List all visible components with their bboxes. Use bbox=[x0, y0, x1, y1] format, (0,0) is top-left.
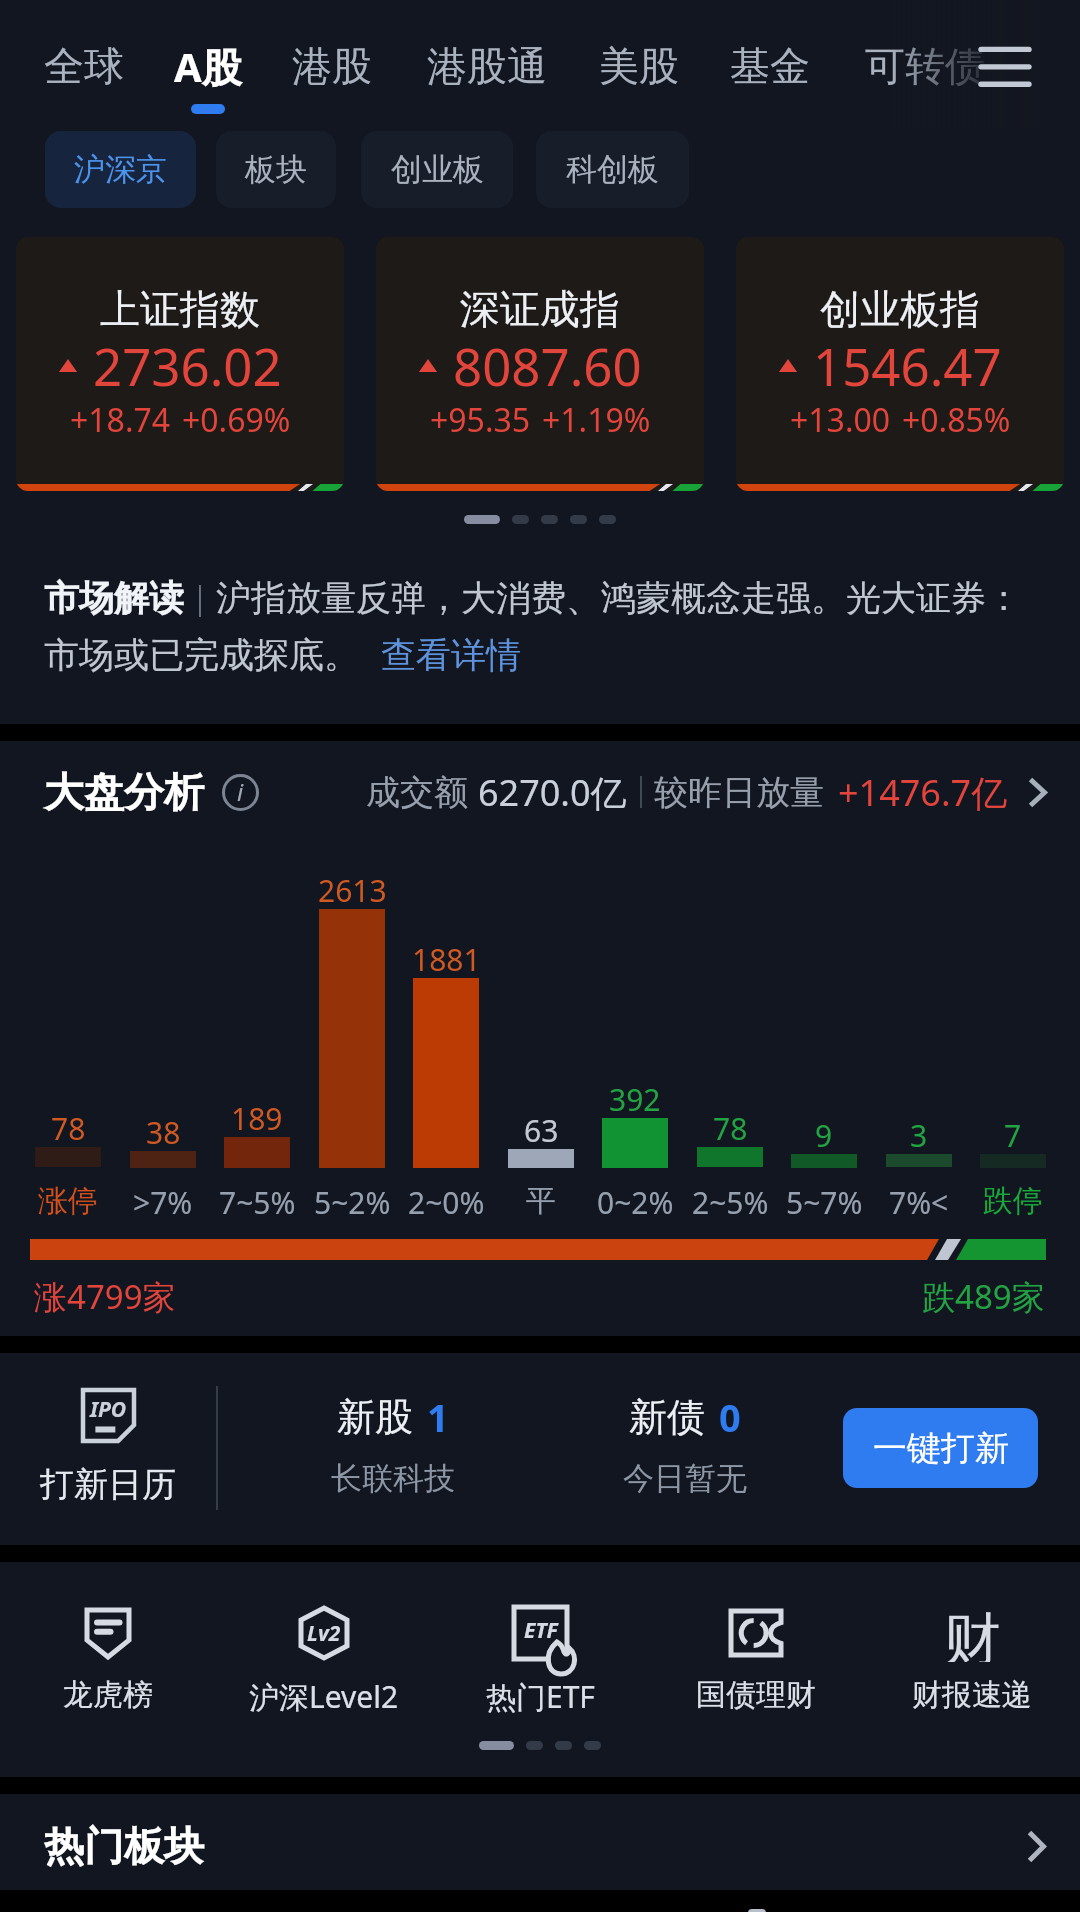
staticText: 跌停 bbox=[983, 1182, 1043, 1220]
staticText: 5~2% bbox=[314, 1182, 391, 1223]
staticText: +95.35 bbox=[430, 398, 531, 442]
button[interactable]: 新股 bbox=[285, 1391, 500, 1498]
staticText: 78 bbox=[51, 1108, 86, 1149]
staticText: 创业板 bbox=[391, 150, 484, 189]
button[interactable]: 上证指数 bbox=[16, 237, 344, 491]
staticText: +18.74 bbox=[70, 398, 171, 442]
button[interactable]: 全球 bbox=[34, 31, 134, 101]
staticText: +1.19% bbox=[542, 398, 651, 442]
staticText: 涨停 bbox=[38, 1182, 98, 1220]
staticText: 较昨日放量 bbox=[654, 771, 824, 814]
staticText: 全球 bbox=[44, 41, 124, 91]
button[interactable]: 可转债 bbox=[860, 31, 990, 101]
staticText: 大盘分析 bbox=[44, 767, 204, 817]
button[interactable]: 美股 bbox=[589, 31, 689, 101]
staticText: 一键打新 bbox=[873, 1427, 1009, 1470]
staticText: 平 bbox=[526, 1182, 556, 1220]
button[interactable]: 大盘分析 bbox=[44, 764, 259, 820]
staticText: 板块 bbox=[245, 150, 307, 189]
staticText: 港股 bbox=[292, 41, 372, 91]
staticText: 涨4799家 bbox=[34, 1274, 176, 1319]
button[interactable]: 国债理财 bbox=[648, 1604, 864, 1714]
staticText: 沪深京 bbox=[74, 150, 167, 189]
button[interactable]: 一键打新 bbox=[843, 1408, 1038, 1488]
staticText: 2613 bbox=[318, 870, 387, 911]
staticText: 龙虎榜 bbox=[63, 1676, 153, 1714]
button[interactable]: 市场解读 bbox=[44, 576, 1058, 677]
staticText: 新债 bbox=[629, 1393, 705, 1441]
staticText: 成交额 bbox=[366, 771, 468, 814]
staticText: 热门ETF bbox=[486, 1676, 595, 1717]
staticText: 沪深Level2 bbox=[249, 1676, 399, 1717]
staticText: +1476.7亿 bbox=[838, 768, 1008, 817]
staticText: 392 bbox=[609, 1079, 661, 1120]
staticText: 78 bbox=[713, 1108, 748, 1149]
staticText: 63 bbox=[524, 1110, 559, 1151]
button[interactable]: 创业板指 bbox=[736, 237, 1064, 491]
button[interactable]: 新债 bbox=[577, 1391, 792, 1498]
button[interactable]: IPO bbox=[38, 1387, 178, 1506]
staticText: 长联科技 bbox=[331, 1459, 455, 1498]
staticText: 上证指数 bbox=[100, 284, 260, 334]
staticText: 热门板块 bbox=[44, 1821, 204, 1871]
staticText: 市场或已完成探底。 bbox=[44, 633, 359, 677]
staticText: 今日暂无 bbox=[623, 1459, 747, 1498]
staticText: 财 bbox=[944, 1604, 1001, 1662]
button[interactable]: Lv2 bbox=[216, 1604, 432, 1717]
button[interactable]: 港股通 bbox=[422, 31, 552, 101]
button[interactable]: 财 bbox=[864, 1604, 1080, 1714]
button[interactable]: ETF bbox=[432, 1604, 648, 1717]
staticText: 1881 bbox=[412, 939, 481, 980]
staticText: 可转债 bbox=[865, 41, 985, 91]
staticText: 财报速递 bbox=[912, 1676, 1032, 1714]
staticText: 1546.47 bbox=[813, 331, 1002, 400]
staticText: A股 bbox=[174, 39, 242, 94]
staticText: +13.00 bbox=[790, 398, 891, 442]
button[interactable]: 成交额 bbox=[366, 764, 1047, 820]
button[interactable]: 港股 bbox=[282, 31, 382, 101]
staticText: 2~0% bbox=[408, 1182, 485, 1223]
button[interactable]: Menu bbox=[957, 25, 1053, 109]
staticText: 8087.60 bbox=[453, 331, 642, 400]
staticText: 7~5% bbox=[219, 1182, 296, 1223]
staticText: 市场解读 bbox=[44, 576, 184, 620]
staticText: 美股 bbox=[599, 41, 679, 91]
staticText: 港股通 bbox=[427, 41, 547, 91]
staticText: ｜ bbox=[184, 578, 216, 618]
button[interactable]: 基金 bbox=[720, 31, 820, 101]
staticText: 38 bbox=[146, 1112, 181, 1153]
staticText: 打新日历 bbox=[40, 1463, 176, 1506]
staticText: 7 bbox=[1004, 1115, 1022, 1156]
staticText: 5~7% bbox=[786, 1182, 863, 1223]
staticText: 6270.0亿 bbox=[478, 768, 627, 817]
button[interactable]: 科创板 bbox=[536, 131, 689, 208]
staticText: 科创板 bbox=[566, 150, 659, 189]
staticText: 3 bbox=[910, 1115, 928, 1156]
staticText: 新股 bbox=[337, 1393, 413, 1441]
staticText: 189 bbox=[231, 1098, 283, 1139]
button[interactable]: 深证成指 bbox=[376, 237, 704, 491]
staticText: 7%< bbox=[889, 1182, 949, 1223]
staticText: 查看详情 bbox=[381, 633, 521, 677]
staticText: ETF bbox=[524, 1616, 558, 1645]
staticText: 0 bbox=[719, 1391, 741, 1443]
staticText: 深证成指 bbox=[460, 284, 620, 334]
button[interactable]: 沪深京 bbox=[45, 131, 196, 208]
staticText: 沪指放量反弹，大消费、鸿蒙概念走强。光大证券： bbox=[216, 576, 1021, 620]
staticText: 创业板指 bbox=[820, 284, 980, 334]
staticText: >7% bbox=[133, 1182, 193, 1223]
staticText: 2736.02 bbox=[93, 331, 282, 400]
button[interactable]: 龙虎榜 bbox=[0, 1604, 216, 1714]
staticText: 2~5% bbox=[692, 1182, 769, 1223]
staticText: 0~2% bbox=[597, 1182, 674, 1223]
button[interactable]: 热门板块 bbox=[0, 1794, 1080, 1890]
staticText: 跌489家 bbox=[922, 1274, 1045, 1319]
staticText: +0.85% bbox=[902, 398, 1011, 442]
button[interactable]: 板块 bbox=[216, 131, 336, 208]
staticText: IPO bbox=[90, 1395, 127, 1424]
staticText: +0.69% bbox=[182, 398, 291, 442]
button[interactable]: 创业板 bbox=[361, 131, 513, 208]
button[interactable]: A股 bbox=[158, 31, 258, 101]
staticText: 基金 bbox=[730, 41, 810, 91]
staticText: 国债理财 bbox=[696, 1676, 816, 1714]
